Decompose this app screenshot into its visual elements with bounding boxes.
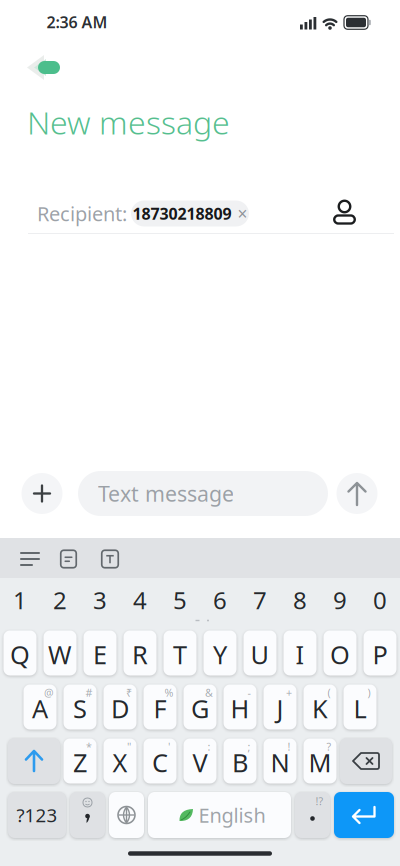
staticText: D [111,692,129,725]
button[interactable]: A [23,684,56,729]
button[interactable]: Z [63,738,96,783]
staticText: ( [327,685,330,700]
button[interactable]: 7 [243,583,276,617]
staticText: 7 [253,584,267,616]
button[interactable]: Add attachment [21,473,62,514]
staticText: 18730218809 [132,203,231,224]
staticText: × [237,202,247,225]
staticText: ' [168,739,170,754]
staticText: + [286,685,292,700]
button[interactable]: Back [17,53,61,82]
button[interactable]: 4 [123,583,156,617]
staticText: J [276,692,283,725]
button[interactable]: R [123,630,156,675]
button[interactable]: Q [3,630,36,675]
button[interactable]: Delete [340,738,392,784]
button[interactable]: L [343,684,376,729]
button[interactable]: D [103,684,136,729]
button[interactable]: W [43,630,76,675]
staticText: F [153,692,166,725]
staticText: % [164,685,173,700]
staticText: H [230,692,249,725]
staticText: 9 [333,584,347,616]
button[interactable]: 2 [43,583,76,617]
staticText: E [93,638,107,671]
button[interactable]: K [303,684,336,729]
button[interactable]: G [183,684,216,729]
staticText: Z [73,746,87,779]
button[interactable]: 5 [163,583,196,617]
staticText: X [112,746,127,779]
button[interactable]: Shift [8,738,60,784]
staticText: A [32,692,48,725]
staticText: : [207,739,210,754]
staticText: * [86,739,92,754]
button[interactable]: E [83,630,116,675]
staticText: W [48,638,72,671]
button[interactable]: C [143,738,176,783]
staticText: !? [315,794,323,808]
button[interactable]: X [103,738,136,783]
button[interactable]: Space [148,792,291,838]
button[interactable]: J [263,684,296,729]
staticText: I [295,638,304,671]
staticText: O [330,638,350,671]
button[interactable]: 6 [203,583,236,617]
button[interactable]: U [243,630,276,675]
button[interactable]: Symbols [8,792,66,838]
staticText: S [73,692,87,725]
staticText: V [192,746,207,779]
button[interactable]: 8 [283,583,316,617]
button[interactable]: T [163,630,196,675]
staticText: English [198,802,265,828]
button[interactable]: Clipboard [61,550,76,568]
staticText: Y [213,638,227,671]
staticText: R [132,638,148,671]
button[interactable]: O [323,630,356,675]
staticText: B [232,746,248,779]
button[interactable]: 9 [323,583,356,617]
staticText: 6 [213,584,227,616]
staticText: & [205,685,213,700]
staticText: P [372,638,387,671]
button[interactable]: H [223,684,256,729]
button[interactable]: Period [295,792,330,838]
button[interactable]: Y [203,630,236,675]
button[interactable]: 1 [3,583,36,617]
staticText: # [85,685,92,700]
button[interactable]: P [363,630,396,675]
button[interactable]: I [283,630,316,675]
staticText: M [308,746,331,779]
button[interactable]: Text editing [102,550,118,568]
staticText: Q [10,638,30,671]
staticText: New message [27,101,230,143]
button[interactable]: Send [336,473,377,514]
button[interactable]: 0 [363,583,396,617]
button[interactable]: Return [334,792,394,838]
button[interactable]: Choose contact [334,200,355,225]
staticText: 3 [93,584,107,616]
staticText: G [191,692,209,725]
staticText: @ [44,685,54,700]
staticText: Text message [98,479,234,508]
staticText: K [312,692,328,725]
button[interactable]: Keyboard menu [19,551,41,567]
staticText: C [152,746,168,779]
button[interactable]: 3 [83,583,116,617]
button[interactable]: V [183,738,216,783]
staticText: 8 [293,584,307,616]
button[interactable]: Remove recipient 18730218809 [131,200,249,226]
staticText: - [247,685,250,700]
button[interactable]: B [223,738,256,783]
button[interactable]: Text message [78,471,328,516]
button[interactable]: Comma [70,792,105,838]
button[interactable]: F [143,684,176,729]
button[interactable]: Switch language [109,792,144,838]
staticText: N [270,746,289,779]
button[interactable]: S [63,684,96,729]
staticText: 4 [133,584,147,616]
button[interactable]: N [263,738,296,783]
staticText: " [127,739,131,754]
button[interactable]: M [303,738,336,783]
